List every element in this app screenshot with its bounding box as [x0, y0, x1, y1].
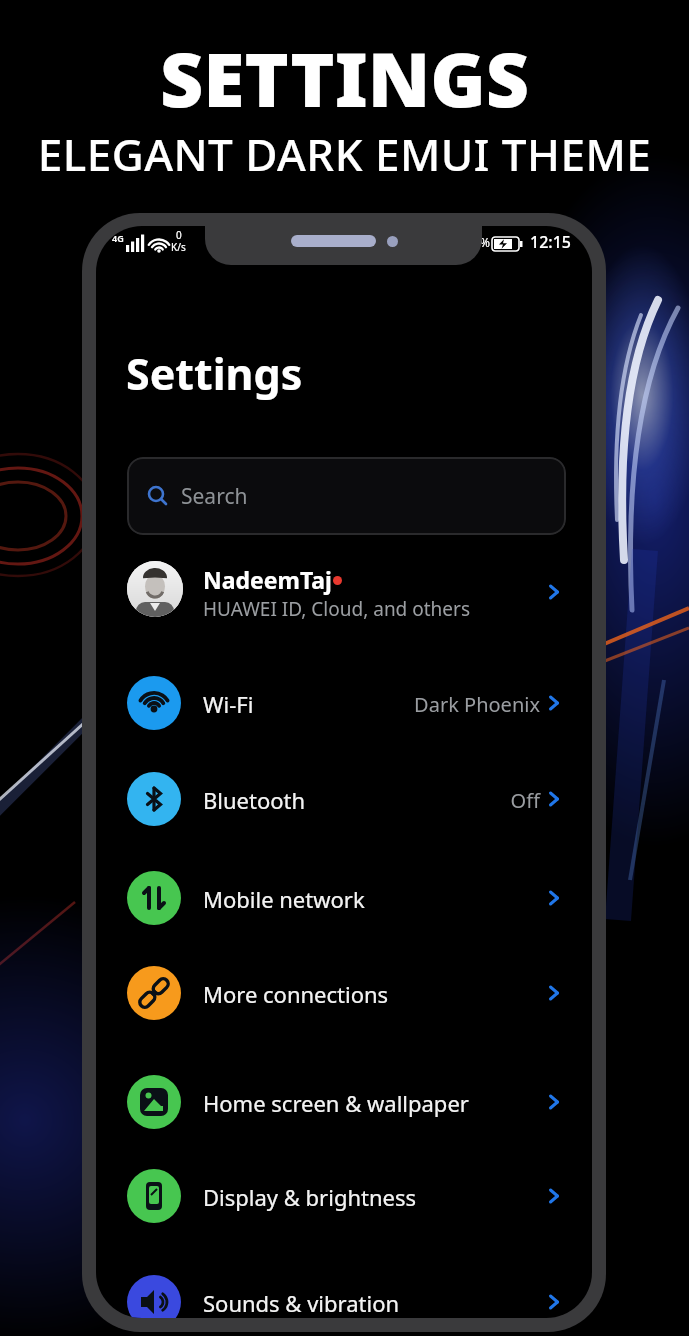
staticText: 12:15 [530, 231, 571, 253]
staticText: Bluetooth [203, 785, 306, 815]
staticText: Search [181, 482, 248, 511]
staticText: HUAWEI ID, Cloud, and others [203, 596, 471, 622]
button[interactable]: Sounds & vibration [120, 1269, 570, 1318]
staticText: SETTINGS [0, 27, 689, 129]
staticText: Display & brightness [203, 1182, 417, 1212]
staticText: ELEGANT DARK EMUI THEME [0, 124, 689, 184]
staticText: Wi-Fi [203, 689, 254, 719]
staticText: Off [334, 787, 540, 814]
button[interactable]: Bluetooth [120, 766, 570, 832]
staticText: Home screen & wallpaper [203, 1088, 469, 1118]
staticText: Settings [126, 344, 303, 403]
staticText: Mobile network [203, 884, 365, 914]
button[interactable]: Search [127, 457, 566, 535]
button[interactable]: Wi-Fi [120, 670, 570, 736]
staticText: K/s [171, 240, 186, 254]
staticText: More connections [203, 979, 389, 1009]
staticText: Dark Phoenix [334, 691, 540, 718]
staticText: Sounds & vibration [203, 1288, 400, 1318]
staticText: NadeemTaj [203, 564, 332, 595]
staticText: 4G [112, 232, 124, 244]
staticText: % [480, 234, 490, 250]
staticText: 0 [176, 228, 182, 242]
button[interactable]: Mobile network [120, 865, 570, 931]
button[interactable]: More connections [120, 960, 570, 1026]
button[interactable]: NadeemTaj [120, 556, 570, 622]
button[interactable]: Home screen & wallpaper [120, 1069, 570, 1135]
button[interactable]: Display & brightness [120, 1163, 570, 1229]
